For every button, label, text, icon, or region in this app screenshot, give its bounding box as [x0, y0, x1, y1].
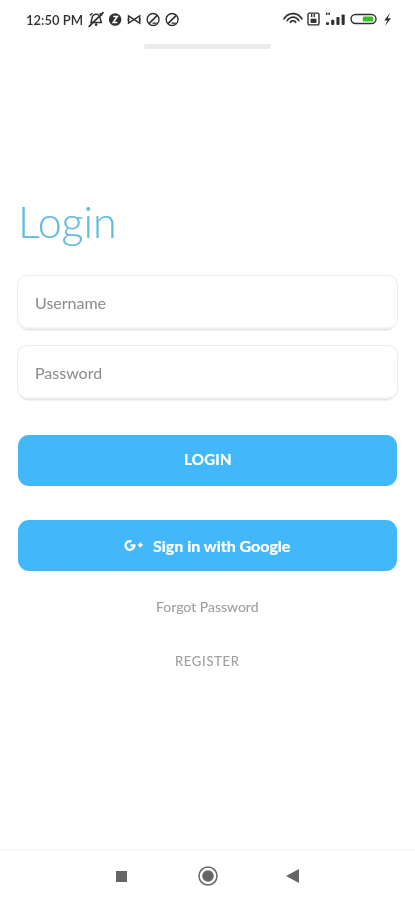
staticText: LOGIN — [184, 450, 232, 468]
staticText: Password — [35, 363, 103, 382]
button[interactable]: LOGIN — [18, 435, 397, 486]
staticText: Sign in with Google — [153, 536, 291, 555]
button[interactable]: REGISTER — [0, 648, 415, 674]
button[interactable]: Forgot Password — [0, 592, 415, 620]
button[interactable]: Back — [268, 852, 316, 900]
button[interactable]: Sign in with Google — [18, 520, 397, 571]
staticText: 12:50 PM — [26, 12, 83, 28]
staticText: REGISTER — [175, 653, 240, 669]
staticText: Forgot Password — [156, 598, 259, 615]
button[interactable]: Username — [17, 275, 398, 330]
staticText: Username — [35, 293, 107, 312]
button[interactable]: Recent apps — [97, 852, 145, 900]
staticText: Login — [18, 196, 117, 248]
button[interactable]: Home — [184, 852, 232, 900]
button[interactable]: Password — [17, 345, 398, 400]
